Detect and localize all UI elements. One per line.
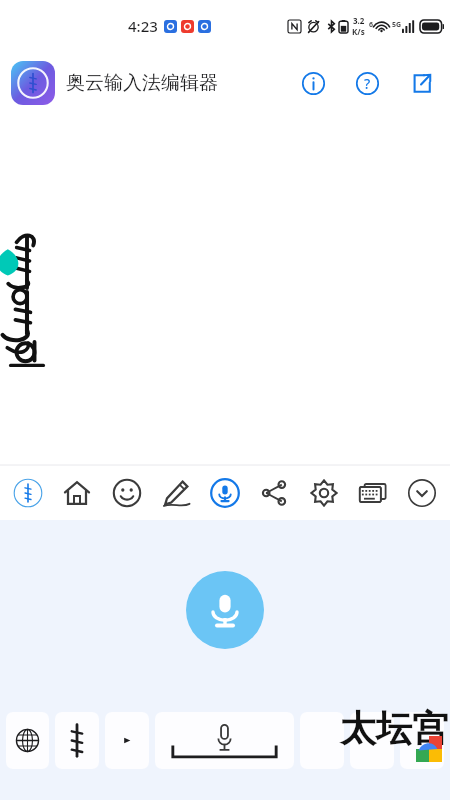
button[interactable]: Settings [302, 471, 346, 515]
button[interactable]: Symbol [105, 712, 149, 769]
button[interactable]: Collapse [400, 471, 444, 515]
button[interactable] [0, 114, 450, 465]
button[interactable]: Info [293, 63, 333, 103]
button[interactable]: Space / voice [155, 712, 294, 769]
staticText: 6 [369, 20, 374, 30]
button[interactable]: Emoji [105, 471, 149, 515]
button[interactable]: Period [350, 712, 394, 769]
button[interactable]: Start voice input [186, 571, 264, 649]
button[interactable]: Keyboard [351, 471, 395, 515]
button[interactable] [11, 61, 55, 105]
staticText: 奥云输入法编辑器 [66, 71, 218, 95]
button[interactable]: Language [6, 712, 49, 769]
button[interactable]: Share [401, 63, 441, 103]
staticText: 太坛宫 [340, 706, 448, 751]
staticText: 3.2 [353, 15, 365, 26]
button[interactable]: Home [55, 471, 99, 515]
button[interactable]: Enter [400, 712, 444, 769]
button[interactable]: Share [252, 471, 296, 515]
button[interactable]: Mongolian input [6, 471, 50, 515]
staticText: ? [364, 74, 371, 93]
button[interactable]: Voice input [203, 471, 247, 515]
button[interactable]: Comma [300, 712, 344, 769]
staticText: K/s [352, 26, 365, 37]
button[interactable]: Handwriting [154, 471, 198, 515]
staticText: 4:23 [128, 16, 158, 36]
staticText: 5G [392, 20, 402, 30]
button[interactable]: Help [347, 63, 387, 103]
button[interactable]: Mongolian [55, 712, 99, 769]
